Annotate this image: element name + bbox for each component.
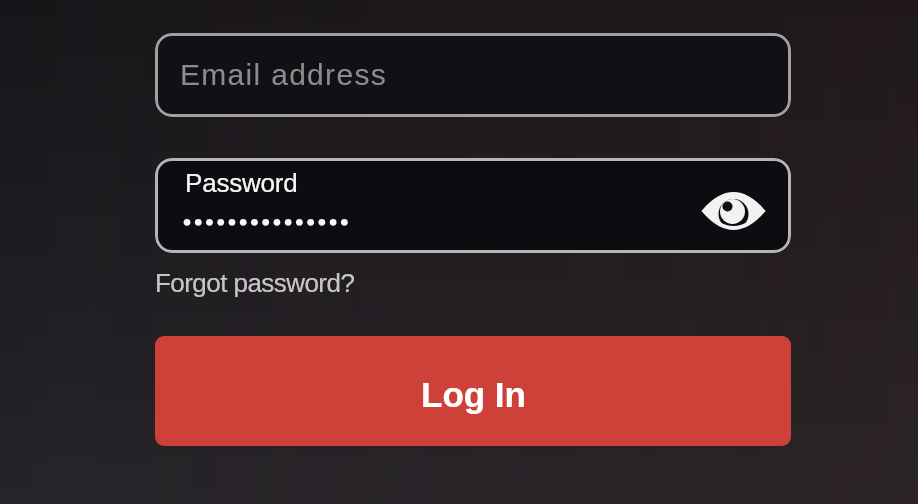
button[interactable]: Email address bbox=[155, 33, 791, 117]
button[interactable] bbox=[701, 191, 767, 231]
staticText: Password bbox=[185, 168, 298, 197]
button[interactable]: Log In bbox=[155, 336, 791, 446]
button[interactable]: Forgot password? bbox=[155, 268, 355, 297]
staticText: Log In bbox=[421, 375, 526, 414]
button[interactable]: Password bbox=[155, 158, 791, 253]
staticText: Email address bbox=[180, 58, 387, 92]
